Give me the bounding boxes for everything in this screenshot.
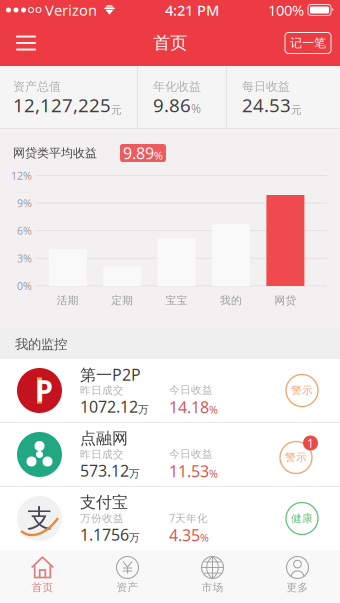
staticText: 今日收益	[169, 447, 213, 460]
button[interactable]: 记一笔	[276, 20, 340, 66]
staticText: %	[209, 466, 218, 481]
staticText: 7天年化	[169, 511, 208, 525]
staticText: 资产总值	[13, 79, 61, 94]
staticText: 4:21 PM	[165, 0, 219, 20]
staticText: 宝宝	[166, 294, 188, 307]
staticText: 9%	[17, 196, 32, 210]
staticText: 万	[129, 531, 140, 544]
staticText: %	[154, 148, 163, 163]
staticText: 活期	[57, 294, 79, 307]
button[interactable]: 点融网	[0, 423, 340, 486]
staticText: 点融网	[80, 429, 128, 448]
button[interactable]: 市场	[170, 550, 255, 603]
staticText: 万	[129, 467, 140, 480]
staticText: 9.86	[153, 93, 191, 117]
staticText: 健康	[291, 512, 313, 525]
staticText: 3%	[17, 251, 32, 265]
staticText: 资产	[116, 581, 138, 594]
staticText: 12%	[11, 168, 32, 183]
button[interactable]: 首页	[0, 550, 85, 603]
staticText: %	[200, 530, 209, 545]
staticText: 14.18	[169, 396, 209, 418]
staticText: 1	[307, 435, 314, 451]
button[interactable]: 资产	[85, 550, 170, 603]
staticText: 网贷	[274, 294, 296, 307]
staticText: 市场	[201, 581, 223, 594]
staticText: 昨日成交	[80, 384, 124, 397]
staticText: 更多	[286, 581, 308, 594]
staticText: 0%	[17, 279, 32, 293]
staticText: 元	[111, 103, 122, 116]
staticText: 网贷类平均收益	[13, 146, 97, 160]
staticText: 1072.12	[80, 396, 138, 417]
staticText: 11.53	[169, 460, 209, 482]
staticText: 定期	[111, 294, 133, 307]
staticText: 12,127,225	[13, 93, 111, 117]
staticText: 支	[27, 503, 52, 534]
staticText: 首页	[31, 581, 53, 594]
staticText: 首页	[153, 32, 187, 54]
button[interactable]: P	[0, 359, 340, 422]
staticText: %	[191, 100, 201, 116]
staticText: 6%	[17, 224, 32, 238]
staticText: 24.53	[242, 93, 291, 117]
staticText: 今日收益	[169, 383, 213, 396]
staticText: 元	[291, 103, 302, 116]
button[interactable]: 支	[0, 487, 340, 550]
staticText: 万份收益	[80, 512, 124, 525]
staticText: 支付宝	[80, 493, 128, 512]
staticText: Verizon	[45, 0, 97, 20]
staticText: 1.1756	[80, 524, 129, 545]
staticText: 第一P2P	[80, 364, 141, 385]
staticText: 573.12	[80, 460, 129, 481]
staticText: 年化收益	[153, 79, 201, 94]
staticText: 我的监控	[15, 336, 67, 352]
staticText: 警示	[285, 451, 307, 464]
staticText: %	[209, 402, 218, 417]
staticText: 我的	[220, 294, 242, 307]
staticText: 记一笔	[290, 36, 326, 50]
staticText: 每日收益	[242, 79, 290, 94]
staticText: P	[35, 372, 52, 409]
staticText: 9.89	[123, 142, 154, 164]
staticText: 万	[138, 403, 149, 416]
staticText: 昨日成交	[80, 448, 124, 461]
staticText: 100%	[268, 0, 304, 20]
staticText: 4.35	[169, 524, 200, 546]
button[interactable]: 更多	[255, 550, 340, 603]
staticText: 警示	[291, 384, 313, 397]
button[interactable]: Menu	[0, 20, 52, 66]
